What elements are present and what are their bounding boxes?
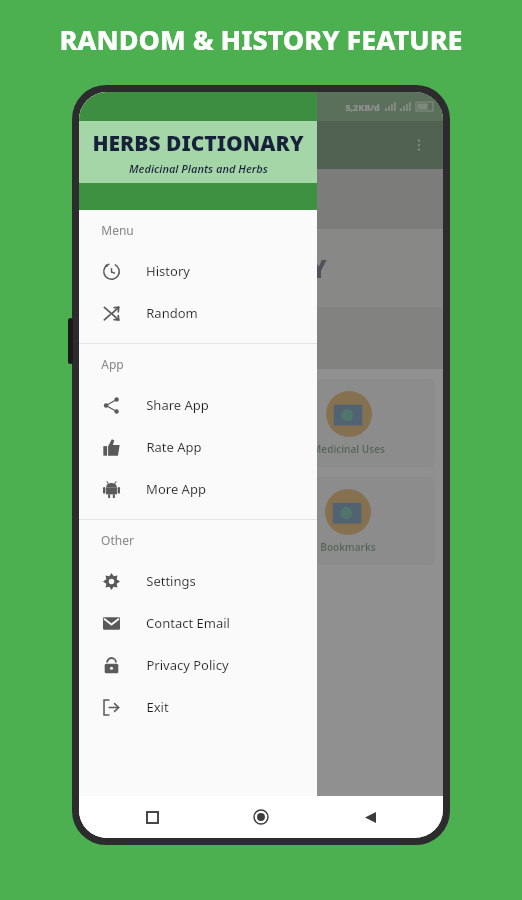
staticText: Medicinal Plants and Herbs bbox=[129, 161, 268, 176]
button[interactable]: Medicinal Uses bbox=[261, 379, 435, 467]
button[interactable]: More App bbox=[79, 468, 317, 510]
button[interactable]: Random bbox=[79, 292, 317, 334]
staticText: HERBS DICTIONARY bbox=[92, 129, 304, 158]
staticText: RANDOM & HISTORY FEATURE bbox=[59, 21, 463, 58]
staticText: App bbox=[101, 356, 124, 372]
button[interactable]: Back bbox=[355, 802, 385, 832]
button[interactable]: Privacy Policy bbox=[79, 644, 317, 686]
staticText: Contact Email bbox=[146, 614, 230, 632]
button[interactable]: More options bbox=[405, 131, 433, 159]
staticText: More App bbox=[146, 480, 206, 498]
button[interactable]: Exit bbox=[79, 686, 317, 728]
button[interactable]: Rate App bbox=[79, 426, 317, 468]
button[interactable]: Contact Email bbox=[79, 602, 317, 644]
staticText: Random bbox=[146, 304, 198, 322]
staticText: Bookmarks bbox=[320, 540, 376, 554]
staticText: Rate App bbox=[146, 438, 202, 456]
staticText: HERBS DICTIONARY bbox=[85, 252, 327, 285]
staticText: Settings bbox=[146, 572, 196, 590]
button[interactable]: Settings bbox=[79, 560, 317, 602]
staticText: Share App bbox=[146, 396, 209, 414]
staticText: Other bbox=[101, 532, 134, 548]
button[interactable]: History bbox=[79, 250, 317, 292]
staticText: Menu bbox=[101, 222, 134, 238]
button[interactable]: Bookmarks bbox=[261, 477, 435, 565]
button[interactable]: Share App bbox=[79, 384, 317, 426]
staticText: Privacy Policy bbox=[146, 656, 229, 674]
staticText: 5,2KB/d bbox=[345, 101, 380, 113]
button[interactable]: Home bbox=[246, 802, 276, 832]
staticText: Exit bbox=[146, 698, 169, 716]
staticText: Medicinal Uses bbox=[312, 442, 385, 456]
button[interactable]: Recents bbox=[137, 802, 167, 832]
staticText: History bbox=[146, 262, 190, 280]
